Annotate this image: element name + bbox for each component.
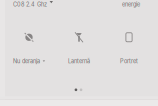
button[interactable]: Lanternă [54, 32, 104, 65]
button[interactable]: Nu deranja [4, 32, 54, 65]
staticText: energie [122, 1, 140, 8]
button[interactable]: energie [122, 1, 140, 8]
staticText: C08 2.4 Ghz [13, 1, 47, 8]
button[interactable]: C08 2.4 Ghz [13, 1, 53, 8]
staticText: Lanternă [68, 58, 90, 65]
button[interactable]: Portret [104, 32, 154, 65]
staticText: Nu deranja [13, 58, 40, 65]
staticText: Portret [120, 58, 138, 65]
